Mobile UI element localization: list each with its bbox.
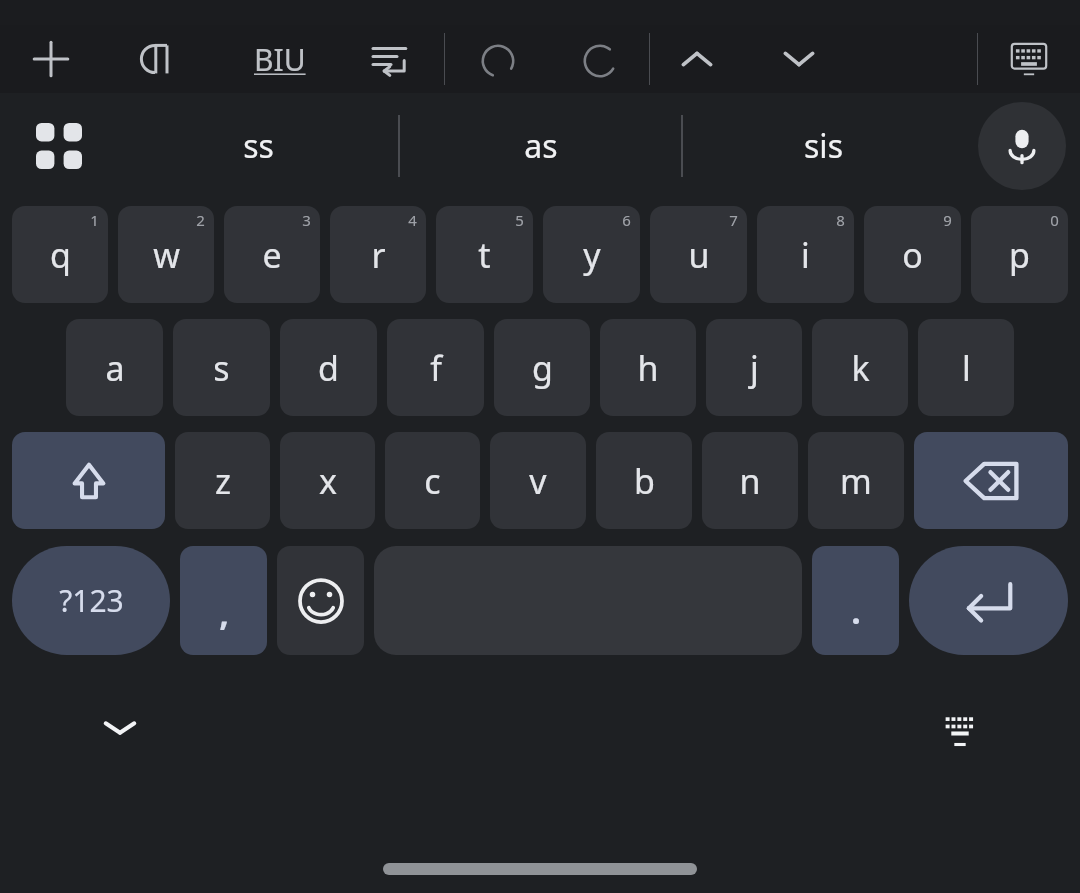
button[interactable]: Undo [471,32,525,86]
staticText: 3 [302,210,311,230]
staticText: k [851,345,870,391]
staticText: 8 [836,210,845,230]
staticText: b [634,458,655,504]
staticText: n [739,458,761,504]
staticText: s [213,345,230,391]
button[interactable]: k [812,319,908,416]
staticText: 6 [622,210,631,230]
button[interactable]: Enter [909,546,1068,655]
staticText: 1 [90,210,99,230]
button[interactable]: u [650,206,747,303]
button[interactable]: Redo [573,32,627,86]
staticText: 2 [196,210,205,230]
staticText: 5 [515,210,524,230]
staticText: ss [243,124,274,168]
button[interactable]: b [596,432,692,529]
staticText: a [105,345,125,391]
button[interactable]: g [494,319,590,416]
staticText: x [319,458,337,504]
staticText: o [902,232,923,278]
button[interactable]: w [118,206,214,303]
button[interactable]: n [702,432,798,529]
button[interactable]: Switch keyboard [924,692,996,764]
staticText: sis [804,124,843,168]
button[interactable]: m [808,432,904,529]
staticText: 4 [408,210,417,230]
button[interactable]: Insert [24,32,78,86]
staticText: t [478,232,491,278]
button[interactable]: Move up [670,32,724,86]
button[interactable]: Keyboard modes [0,93,118,198]
staticText: f [430,345,442,391]
staticText: u [688,232,710,278]
staticText: 9 [943,210,952,230]
staticText: i [801,232,810,278]
button[interactable]: t [436,206,533,303]
button[interactable]: d [280,319,377,416]
staticText: BIU [254,39,306,80]
button[interactable]: Shift [12,432,165,529]
button[interactable]: j [706,319,802,416]
staticText: j [750,345,759,391]
button[interactable]: ss [118,93,398,198]
button[interactable]: e [224,206,320,303]
staticText: p [1009,232,1030,278]
staticText: d [318,345,339,391]
staticText: q [50,232,71,278]
button[interactable]: as [400,93,681,198]
staticText: w [153,232,180,278]
button[interactable]: h [600,319,696,416]
button[interactable]: Hide keyboard [84,692,156,764]
button[interactable]: f [387,319,484,416]
button[interactable]: Move down [772,32,826,86]
button[interactable]: c [385,432,480,529]
staticText: . [851,588,861,634]
button[interactable]: l [918,319,1014,416]
button[interactable]: Emoji [277,546,364,655]
button[interactable]: i [757,206,854,303]
button[interactable]: . [812,546,899,655]
button[interactable]: Align [362,32,416,86]
button[interactable]: a [66,319,163,416]
staticText: , [219,590,229,636]
staticText: v [529,458,547,504]
button[interactable]: BIU [232,32,328,86]
staticText: r [371,232,386,278]
staticText: y [583,232,601,278]
staticText: h [637,345,659,391]
staticText: g [532,345,553,391]
button[interactable]: v [490,432,586,529]
button[interactable]: ?123 [12,546,170,655]
button[interactable]: q [12,206,108,303]
button[interactable]: sis [683,93,964,198]
staticText: ?123 [59,580,124,621]
button[interactable]: Keyboard settings [1002,32,1056,86]
staticText: e [262,232,282,278]
staticText: z [215,458,231,504]
staticText: 0 [1050,210,1059,230]
button[interactable]: Voice input [978,102,1066,190]
button[interactable]: Backspace [914,432,1068,529]
staticText: m [840,458,872,504]
button[interactable]: o [864,206,961,303]
button[interactable]: y [543,206,640,303]
staticText: as [524,124,558,168]
staticText: l [962,345,971,391]
button[interactable]: z [175,432,270,529]
button[interactable]: s [173,319,270,416]
staticText: 7 [729,210,738,230]
staticText: c [424,458,441,504]
button[interactable]: p [971,206,1068,303]
button[interactable]: , [180,546,267,655]
button[interactable]: r [330,206,426,303]
button[interactable]: Paragraph style [128,32,182,86]
button[interactable]: x [280,432,375,529]
